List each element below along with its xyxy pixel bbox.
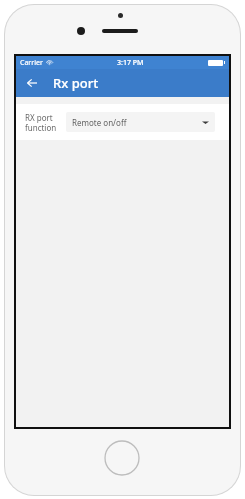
button[interactable]: Remote on/off [66,112,215,132]
staticText: Rx port [53,74,99,92]
staticText: RX port function [25,112,57,133]
staticText: Remote on/off [72,117,127,128]
staticText: Carrier [20,58,43,68]
staticText: 3:17 PM [117,58,144,68]
button[interactable]: RX port function [16,104,229,140]
button[interactable]: Back [21,72,43,94]
button[interactable]: Home [104,440,140,476]
